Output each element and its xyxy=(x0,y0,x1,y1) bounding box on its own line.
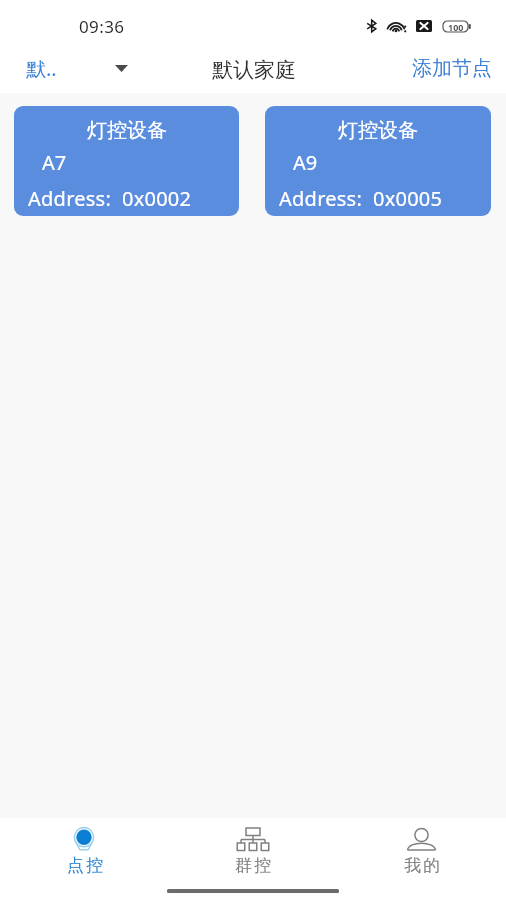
staticText: 09:36 xyxy=(79,15,125,38)
other: 点控 xyxy=(72,828,96,851)
other: Select home xyxy=(115,65,128,72)
staticText: 群控 xyxy=(235,855,274,876)
staticText: 我的 xyxy=(404,855,443,876)
staticText: 100 xyxy=(448,21,464,32)
staticText: 点控 xyxy=(67,855,106,876)
button[interactable]: 点控 xyxy=(0,818,168,878)
staticText: A9 xyxy=(293,149,318,176)
staticText: 默.. xyxy=(26,55,57,82)
other: 我的 xyxy=(407,828,436,851)
button[interactable]: 默.. xyxy=(0,51,148,86)
staticText: Address: 0x0005 xyxy=(279,185,443,212)
staticText: 灯控设备 xyxy=(338,118,418,143)
button[interactable]: 添加节点 xyxy=(396,50,506,87)
staticText: 默认家庭 xyxy=(212,57,296,83)
button[interactable]: 灯控设备 xyxy=(14,106,239,216)
button[interactable]: 我的 xyxy=(337,818,506,878)
staticText: A7 xyxy=(42,149,67,176)
button[interactable]: 群控 xyxy=(168,818,337,878)
staticText: 添加节点 xyxy=(412,56,492,81)
button[interactable]: 灯控设备 xyxy=(265,106,491,216)
staticText: Address: 0x0002 xyxy=(28,185,192,212)
other: 群控 xyxy=(240,828,266,851)
staticText: 灯控设备 xyxy=(87,118,167,143)
